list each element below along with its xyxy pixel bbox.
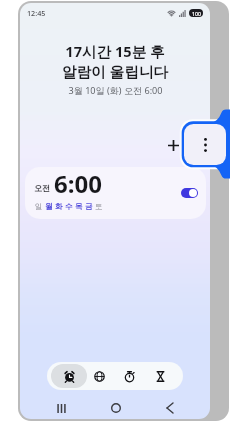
button[interactable]: 오전: [25, 167, 206, 219]
staticText: 금: [85, 202, 93, 212]
staticText: 6:00: [54, 167, 102, 200]
button[interactable]: Timer: [145, 362, 176, 390]
staticText: 12:45: [27, 8, 46, 18]
staticText: 수: [65, 202, 73, 212]
button[interactable]: Add alarm: [161, 133, 185, 157]
button[interactable]: Back: [159, 397, 181, 419]
staticText: 화: [55, 202, 63, 212]
staticText: 토: [95, 202, 103, 212]
button[interactable]: Alarm enabled: [181, 188, 198, 198]
button[interactable]: Stopwatch: [114, 362, 145, 390]
staticText: 목: [75, 202, 83, 212]
button[interactable]: Alarm: [54, 362, 84, 390]
button[interactable]: Recents: [50, 397, 72, 419]
staticText: 3월 10일 (화) 오전 6:00: [68, 84, 163, 96]
button[interactable]: World clock: [84, 362, 114, 390]
staticText: 일: [35, 202, 43, 212]
button[interactable]: Home: [105, 397, 127, 419]
staticText: 17시간 15분 후: [65, 41, 165, 61]
staticText: 100: [192, 10, 201, 17]
staticText: 월: [45, 202, 53, 212]
button[interactable]: More options: [184, 124, 226, 165]
staticText: 오전: [34, 183, 50, 193]
staticText: 알람이 울립니다: [62, 61, 168, 81]
